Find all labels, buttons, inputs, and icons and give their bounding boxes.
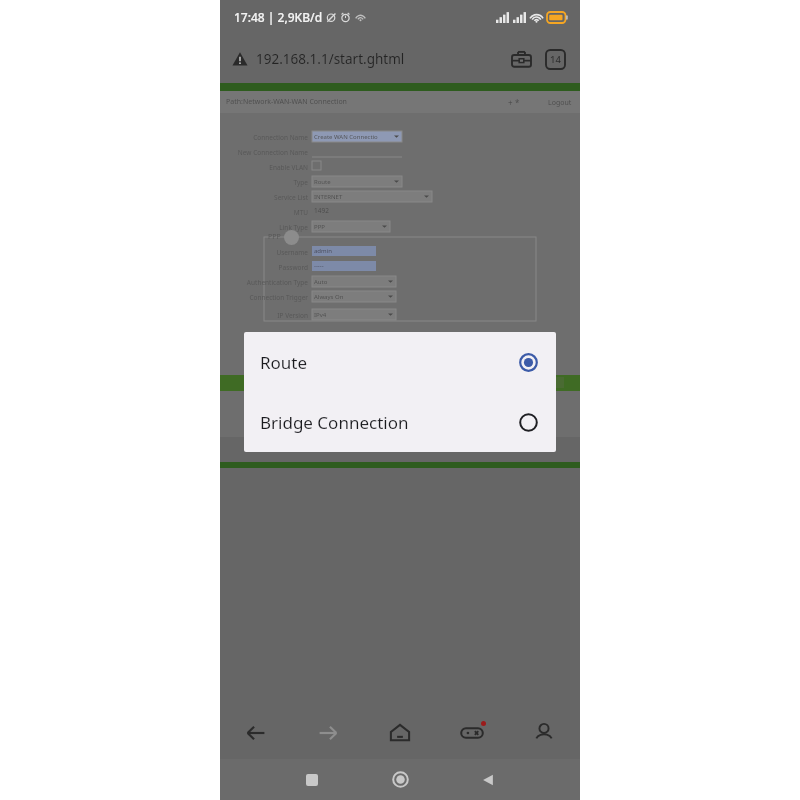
staticText: 14 <box>550 53 561 66</box>
staticText: Create WAN Connectio <box>314 133 378 141</box>
button[interactable]: Back <box>220 707 292 759</box>
button[interactable]: Back <box>444 759 532 800</box>
button[interactable]: Home <box>364 707 436 759</box>
staticText: 192.168.1.1/start.ghtml <box>256 50 405 68</box>
button[interactable]: Games <box>436 707 508 759</box>
staticText: PPP <box>268 232 281 242</box>
staticText: IPv4 <box>314 311 327 319</box>
staticText: * <box>515 97 520 108</box>
staticText: Connection Trigger <box>220 293 308 302</box>
staticText: Auto <box>314 278 328 286</box>
staticText: Username <box>220 248 308 257</box>
staticText: admin <box>314 247 332 255</box>
staticText: Path:Network-WAN-WAN Connection <box>226 97 347 107</box>
staticText: Enable VLAN <box>220 163 308 172</box>
staticText: 17:48 | 2,9KB/d <box>234 9 323 25</box>
button[interactable]: Home <box>356 759 444 800</box>
button[interactable]: Forward <box>292 707 364 759</box>
staticText: + <box>508 97 515 108</box>
staticText: Authentication Type <box>220 278 308 287</box>
staticText: 1492 <box>314 206 329 215</box>
staticText: Link Type <box>220 223 308 232</box>
button[interactable]: Bridge Connection <box>244 392 556 452</box>
staticText: ©2008-2015 ZTE Corporation. All rights r… <box>220 399 580 408</box>
staticText: ----- <box>314 262 324 270</box>
staticText: Route <box>314 178 331 186</box>
staticText: Bridge Connection <box>260 411 519 434</box>
button[interactable]: Work profile <box>506 44 536 74</box>
staticText: IP Version <box>220 311 308 320</box>
button[interactable]: Route <box>244 332 556 392</box>
staticText: INTERNET <box>314 193 343 201</box>
button[interactable]: Tabs, 14 open <box>540 44 570 74</box>
staticText: Connection Name <box>220 133 308 142</box>
staticText: Always On <box>314 293 344 301</box>
staticText: Password <box>220 263 308 272</box>
button[interactable]: Recents <box>268 759 356 800</box>
staticText: New Connection Name <box>220 148 308 157</box>
button[interactable]: Profile <box>508 707 580 759</box>
staticText: PPP <box>314 223 325 231</box>
staticText: Route <box>260 351 519 374</box>
staticText: Logout <box>548 98 572 108</box>
staticText: Service List <box>220 193 308 202</box>
